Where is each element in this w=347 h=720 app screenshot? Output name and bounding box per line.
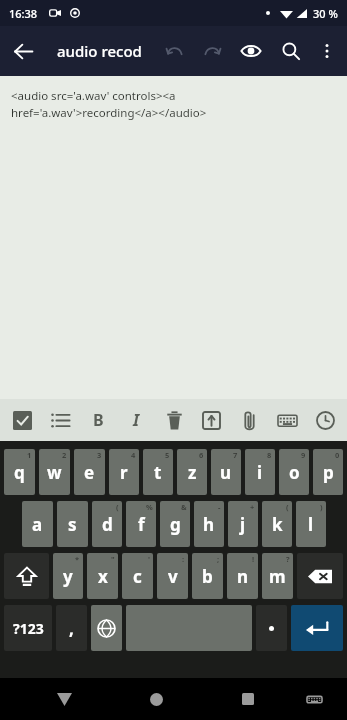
staticText: ) — [320, 502, 323, 512]
staticText: r — [120, 461, 128, 484]
staticText: % — [146, 502, 153, 512]
staticText: ( — [286, 502, 289, 512]
button[interactable]: a — [22, 501, 53, 547]
staticText: b — [202, 565, 213, 588]
staticText: 0 — [335, 450, 340, 460]
staticText: f — [138, 513, 145, 536]
button[interactable]: Delete — [158, 404, 190, 436]
staticText: B — [93, 409, 104, 431]
button[interactable]: Checkbox — [6, 404, 38, 436]
button[interactable]: k — [262, 501, 292, 547]
button[interactable]: Back — [46, 681, 82, 717]
staticText: z — [188, 461, 197, 484]
staticText: 2 — [62, 450, 67, 460]
button[interactable]: Recent apps — [230, 681, 266, 717]
staticText: 7 — [233, 450, 238, 460]
staticText: o — [289, 461, 300, 484]
staticText: - — [218, 502, 221, 512]
button[interactable]: Bullet list — [44, 404, 76, 436]
staticText: y — [63, 565, 73, 588]
staticText: ; — [217, 554, 220, 564]
staticText: w — [47, 461, 62, 484]
staticText: 9 — [301, 450, 306, 460]
button[interactable]: p — [313, 449, 343, 495]
button[interactable]: Attach — [233, 404, 265, 436]
staticText: a — [32, 513, 43, 536]
staticText: q — [14, 461, 25, 484]
staticText: 1 — [27, 450, 32, 460]
button[interactable]: b — [192, 553, 223, 599]
button[interactable]: Enter — [291, 605, 343, 651]
button[interactable]: Preview — [231, 31, 271, 71]
button[interactable]: Backspace — [297, 553, 343, 599]
button[interactable]: Language — [91, 605, 122, 651]
button[interactable]: More options — [311, 35, 343, 67]
staticText: 6 — [199, 450, 204, 460]
button[interactable]: d — [92, 501, 122, 547]
button[interactable]: Shift — [4, 553, 49, 599]
staticText: k — [272, 513, 283, 536]
button[interactable]: Back — [0, 28, 46, 74]
button[interactable]: e — [74, 449, 105, 495]
button[interactable]: m — [262, 553, 293, 599]
button[interactable]: Symbols — [4, 605, 52, 651]
button[interactable]: u — [211, 449, 241, 495]
staticText: ( — [116, 502, 119, 512]
staticText: l — [308, 513, 314, 536]
staticText: g — [170, 513, 181, 536]
button[interactable]: o — [279, 449, 309, 495]
staticText: x — [98, 565, 108, 588]
button[interactable]: History — [309, 404, 341, 436]
button[interactable]: Search — [271, 31, 311, 71]
staticText: u — [220, 461, 232, 484]
staticText: ? — [286, 554, 290, 564]
staticText: h — [203, 513, 215, 536]
button[interactable]: x — [87, 553, 118, 599]
button[interactable]: n — [227, 553, 258, 599]
button[interactable]: Italic — [120, 404, 152, 436]
staticText: e — [84, 461, 95, 484]
staticText: m — [269, 565, 286, 588]
staticText: & — [181, 502, 187, 512]
staticText: s — [68, 513, 77, 536]
button[interactable]: z — [177, 449, 207, 495]
staticText: 30 % — [313, 6, 338, 21]
staticText: " — [111, 554, 115, 564]
staticText: j — [240, 513, 246, 536]
button[interactable]: Switch keyboard — [297, 682, 331, 716]
button[interactable]: Keyboard — [271, 404, 303, 436]
button[interactable]: y — [53, 553, 83, 599]
staticText: 4 — [131, 450, 136, 460]
button[interactable]: g — [160, 501, 190, 547]
button[interactable]: Redo — [193, 32, 231, 70]
button[interactable]: Bold — [82, 404, 114, 436]
button[interactable]: f — [126, 501, 156, 547]
button[interactable]: s — [57, 501, 88, 547]
button[interactable]: Undo — [155, 32, 193, 70]
button[interactable]: Comma — [56, 605, 87, 651]
staticText: audio recod — [57, 41, 142, 61]
button[interactable]: v — [157, 553, 188, 599]
staticText: + — [250, 502, 255, 512]
button[interactable]: r — [109, 449, 139, 495]
button[interactable]: Period — [256, 605, 287, 651]
button[interactable]: h — [194, 501, 224, 547]
button[interactable]: q — [4, 449, 35, 495]
button[interactable]: i — [245, 449, 275, 495]
staticText: I — [133, 409, 140, 431]
staticText: i — [257, 461, 263, 484]
staticText: <audio src='a.wav' controls><a href='a.w… — [11, 88, 207, 121]
button[interactable]: Home — [138, 681, 174, 717]
staticText: 8 — [267, 450, 272, 460]
button[interactable]: c — [122, 553, 153, 599]
button[interactable]: Insert file — [195, 404, 227, 436]
staticText: d — [102, 513, 113, 536]
button[interactable]: t — [143, 449, 173, 495]
staticText: * — [75, 554, 80, 564]
button[interactable]: j — [228, 501, 258, 547]
button[interactable]: l — [296, 501, 326, 547]
staticText: , — [69, 617, 74, 640]
staticText: p — [323, 461, 334, 484]
button[interactable]: w — [39, 449, 70, 495]
